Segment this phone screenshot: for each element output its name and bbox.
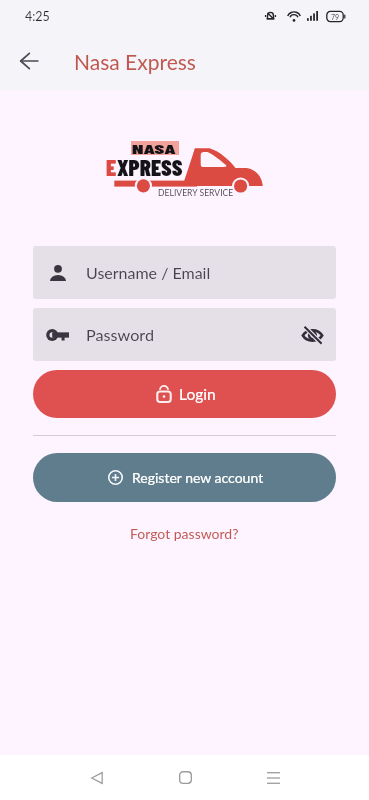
- staticText: Register new account: [132, 469, 264, 486]
- button[interactable]: Recent apps: [251, 755, 295, 800]
- staticText: NASA: [132, 140, 177, 156]
- staticText: 79: [331, 13, 340, 21]
- button[interactable]: Username / Email: [33, 246, 336, 299]
- staticText: Nasa Express: [74, 49, 196, 74]
- staticText: Password: [86, 325, 154, 344]
- button[interactable]: Register new account: [33, 453, 336, 502]
- button[interactable]: Password: [33, 308, 336, 361]
- button[interactable]: Show password: [299, 322, 325, 348]
- button[interactable]: Forgot password?: [122, 522, 247, 545]
- staticText: 4:25: [25, 9, 50, 24]
- staticText: DELIVERY SERVICE: [158, 188, 234, 198]
- staticText: Login: [179, 385, 216, 404]
- button[interactable]: Home: [163, 755, 207, 800]
- button[interactable]: Login: [33, 370, 336, 418]
- staticText: Username / Email: [86, 263, 211, 282]
- button[interactable]: Back: [75, 755, 119, 800]
- button[interactable]: Back: [12, 44, 46, 78]
- staticText: E: [106, 153, 117, 181]
- staticText: XPRESS: [117, 153, 183, 181]
